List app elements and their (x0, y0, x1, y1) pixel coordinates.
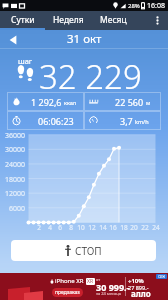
staticText: 18 (120, 223, 128, 232)
staticText: 22 (141, 223, 149, 232)
staticText: 12000 (5, 189, 26, 198)
button[interactable]: 06:06:23 (7, 111, 84, 130)
staticText: 4 (48, 223, 52, 232)
staticText: 14 (99, 223, 107, 232)
staticText: 12 (88, 223, 96, 232)
staticText: от (96, 277, 101, 282)
staticText: 16:08 (147, 1, 165, 11)
button[interactable]: iPhone XR (0, 273, 168, 300)
staticText: СТОП (75, 244, 102, 258)
staticText: 32 229 (39, 54, 142, 99)
staticText: iPhone XR (55, 277, 84, 285)
staticText: 24 (152, 223, 160, 232)
staticText: 10 (77, 223, 85, 232)
staticText: 6 (58, 223, 62, 232)
staticText: 28% (128, 2, 140, 10)
staticText: Месяц (100, 14, 127, 26)
staticText: 1 292,6 (31, 96, 62, 108)
staticText: 18000 (5, 175, 26, 184)
staticText: 2 (37, 223, 41, 232)
staticText: ккал (64, 99, 77, 106)
staticText: ÷10% (128, 277, 144, 285)
staticText: 36000 (5, 131, 26, 140)
staticText: за 24 месяца (96, 291, 122, 296)
staticText: 30000 (5, 145, 26, 154)
staticText: алло (131, 288, 151, 299)
staticText: km/h (135, 118, 149, 125)
staticText: Неделя (53, 14, 84, 26)
button[interactable]: Сутки (0, 11, 45, 30)
button[interactable]: 22 560 (84, 92, 161, 111)
button[interactable]: 1 292,6 (7, 92, 84, 111)
staticText: шаг (18, 56, 33, 66)
staticText: 30 999.- (96, 281, 130, 293)
staticText: м (146, 99, 151, 106)
staticText: предзаказ (55, 289, 80, 296)
staticText: 3,7 (120, 115, 133, 127)
staticText: ⓘ✕ (158, 274, 166, 279)
staticText: 20 (130, 223, 138, 232)
button[interactable]: СТОП (11, 240, 156, 261)
staticText: 22 560 (115, 96, 144, 108)
button[interactable]: Неделя (45, 11, 91, 30)
staticText: 16 (109, 223, 117, 232)
staticText: 6000 (9, 204, 26, 213)
button[interactable]: 3,7 (84, 111, 161, 130)
staticText: 06:06:23 (38, 115, 74, 127)
staticText: 8 (69, 223, 73, 232)
button[interactable]: Месяц (91, 11, 136, 30)
button[interactable]: More options (146, 11, 168, 30)
staticText: 31 окт (67, 31, 102, 47)
staticText: Сутки (11, 14, 35, 26)
button[interactable]: Close ad (156, 274, 167, 279)
staticText: 27 899.- (128, 284, 149, 291)
button[interactable]: Previous day (0, 30, 26, 49)
staticText: 24000 (5, 160, 26, 169)
staticText: XR (87, 278, 94, 285)
